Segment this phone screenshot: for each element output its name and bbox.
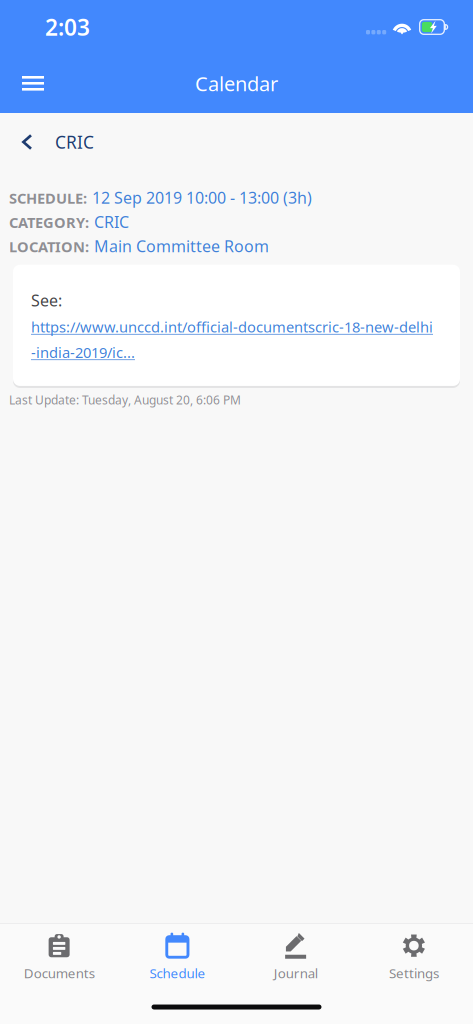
staticText: Journal [274,964,318,982]
staticText: CRIC [55,130,94,153]
staticText: CRIC [94,211,129,232]
button[interactable]: Schedule [118,924,236,990]
staticText: LOCATION: [9,237,89,256]
staticText: Calendar [195,70,278,97]
staticText: Main Committee Room [94,235,269,257]
staticText: 12 Sep 2019 10:00 - 13:00 (3h) [92,187,312,208]
staticText: SCHEDULE: [9,188,87,208]
button[interactable]: Journal [236,924,355,990]
staticText: https://www.unccd.int/official-documents… [31,317,433,336]
button[interactable]: Menu [11,64,55,103]
staticText: Schedule [149,964,205,982]
staticText: See: [31,290,62,311]
staticText: Settings [389,964,439,982]
button[interactable]: CRIC [0,113,473,171]
button[interactable]: Documents [0,924,118,990]
staticText: 2:03 [45,12,90,42]
button[interactable]: Settings [355,924,473,990]
staticText: CATEGORY: [9,213,89,232]
staticText: Documents [24,964,95,982]
staticText: Last Update: Tuesday, August 20, 6:06 PM [9,392,241,408]
staticText: -india-2019/ic... [31,342,135,362]
